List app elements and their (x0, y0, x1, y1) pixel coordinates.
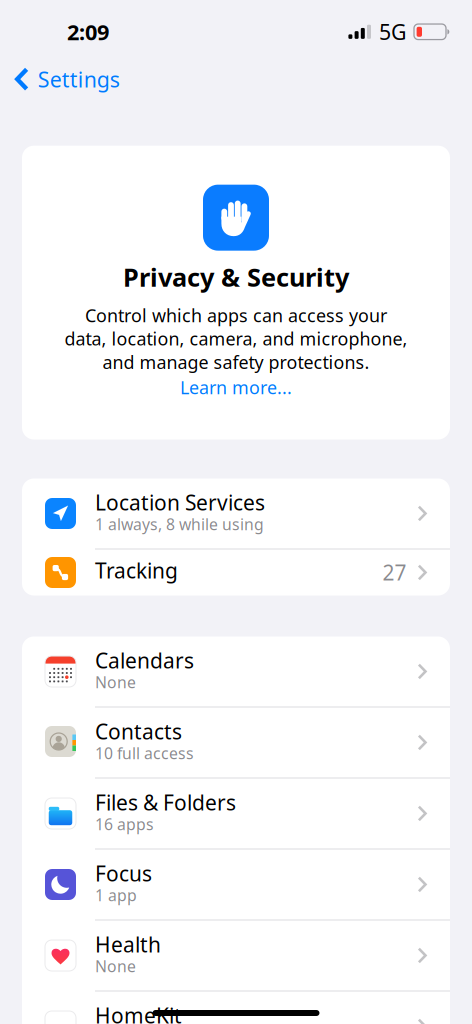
staticText: and manage safety protections. (102, 350, 369, 374)
staticText: Files & Folders (95, 788, 236, 816)
staticText: None (95, 671, 136, 693)
staticText: 5G (379, 17, 407, 46)
staticText: Tracking (95, 556, 178, 585)
staticText: Privacy & Security (123, 260, 349, 294)
button[interactable]: HomeKit (22, 991, 450, 1024)
staticText: Learn more... (180, 375, 292, 399)
button[interactable]: Tracking (22, 549, 450, 595)
staticText: None (95, 955, 136, 977)
staticText: Control which apps can access your (85, 303, 387, 327)
button[interactable]: Settings (15, 61, 120, 104)
button[interactable]: Files & Folders (22, 778, 450, 848)
staticText: Focus (95, 859, 152, 887)
button[interactable]: Location Services (22, 478, 450, 548)
staticText: Contacts (95, 717, 182, 745)
staticText: 1 always, 8 while using (95, 513, 264, 535)
button[interactable]: Calendars (22, 636, 450, 706)
staticText: Location Services (95, 488, 265, 516)
staticText: Health (95, 930, 161, 958)
staticText: Calendars (95, 646, 194, 674)
staticText: 16 apps (95, 813, 154, 835)
staticText: HomeKit (95, 1001, 182, 1024)
staticText: 10 full access (95, 742, 194, 764)
staticText: data, location, camera, and microphone, (64, 326, 407, 351)
button[interactable]: Learn more... (180, 374, 292, 399)
staticText: 1 app (95, 884, 137, 906)
staticText: Settings (38, 65, 120, 94)
button[interactable]: Contacts (22, 707, 450, 777)
staticText: 2:09 (67, 17, 109, 47)
button[interactable]: Health (22, 920, 450, 990)
button[interactable]: Focus (22, 849, 450, 919)
staticText: 27 (382, 558, 406, 587)
